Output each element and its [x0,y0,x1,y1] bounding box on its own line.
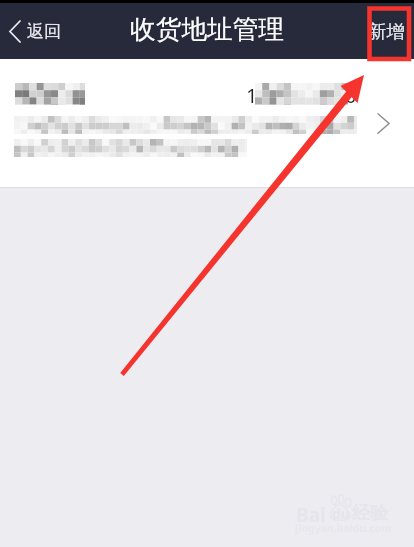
staticText: 0 [345,82,357,109]
staticText: 经验 [352,502,388,525]
staticText: 新增 [368,20,406,43]
button[interactable]: 收货地址 [0,59,414,187]
staticText: 返回 [27,21,61,42]
staticText: 1 [246,82,258,109]
button[interactable]: 新增 [354,10,414,53]
staticText: 收货地址管理 [130,13,285,45]
button[interactable]: 返回 [0,13,75,50]
